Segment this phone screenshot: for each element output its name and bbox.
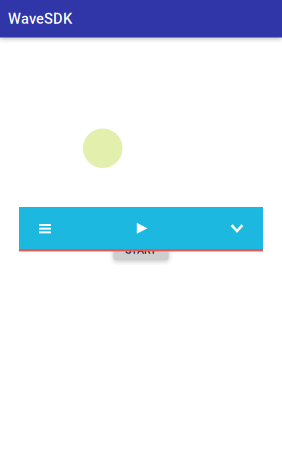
button[interactable]: Menu [33, 216, 57, 240]
button[interactable]: Collapse [225, 216, 249, 240]
button[interactable]: Play [130, 216, 154, 240]
staticText: START [125, 244, 157, 256]
button[interactable]: START [113, 232, 168, 260]
staticText: WaveSDK [8, 10, 72, 27]
